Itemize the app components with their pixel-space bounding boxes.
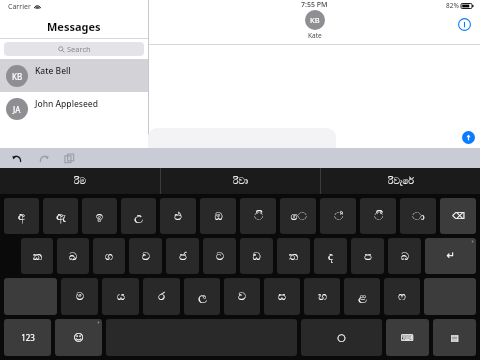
staticText: ඔ <box>214 211 223 222</box>
staticText: ක <box>33 251 42 262</box>
button[interactable]: හ <box>304 278 340 315</box>
button[interactable]: ස <box>264 278 300 315</box>
button[interactable]: ☺ <box>55 319 102 356</box>
staticText: බ <box>401 251 409 262</box>
button[interactable]: ම <box>61 278 98 315</box>
staticText: ට <box>216 251 224 262</box>
button[interactable]: ○ <box>301 319 382 356</box>
staticText: ෙ <box>290 211 307 222</box>
staticText: Messages <box>47 19 101 34</box>
button[interactable]: ග <box>93 238 125 274</box>
button[interactable]: ජ <box>166 238 199 274</box>
staticText: ච <box>142 251 150 262</box>
button[interactable]: ත <box>277 238 310 274</box>
staticText: ර <box>158 291 165 302</box>
button[interactable]: රිවා <box>161 168 320 194</box>
button[interactable]: Undo <box>9 150 25 166</box>
staticText: 82% <box>446 1 459 10</box>
button[interactable]: ළ <box>344 278 380 315</box>
staticText: Kate Bell <box>35 65 71 77</box>
button[interactable]: ක <box>21 238 53 274</box>
staticText: රිවැරේ <box>388 177 414 186</box>
staticText: ී <box>374 211 383 222</box>
button[interactable]: උ <box>121 198 156 234</box>
staticText: එ <box>174 211 182 222</box>
staticText: ඛ <box>69 251 77 262</box>
staticText: ් <box>334 211 343 222</box>
button[interactable]: Details <box>456 16 472 32</box>
staticText: KB <box>12 71 23 82</box>
staticText: ද <box>328 251 333 262</box>
button[interactable]: රිවැරේ <box>321 168 480 194</box>
button[interactable]: එ <box>160 198 196 234</box>
button[interactable]: ඉ <box>82 198 117 234</box>
staticText: JA <box>13 104 21 115</box>
staticText: ⌨ <box>401 333 414 343</box>
button[interactable]: Paste <box>61 150 77 166</box>
staticText: 7:55 PM <box>301 0 328 10</box>
button[interactable]: ට <box>203 238 236 274</box>
button[interactable]: ඇ <box>43 198 78 234</box>
staticText: ☺ <box>73 332 84 344</box>
staticText: ↵ <box>446 250 455 262</box>
button[interactable]: ⌫ <box>440 198 476 234</box>
button[interactable]: ඛ <box>57 238 89 274</box>
button[interactable]: ප <box>351 238 384 274</box>
button[interactable]: රිම <box>0 168 160 194</box>
button[interactable]: ල <box>184 278 220 315</box>
staticText: ග <box>105 251 113 262</box>
button[interactable]: ▤ <box>433 319 476 356</box>
button[interactable]: ි <box>240 198 276 234</box>
staticText: ඉ <box>96 211 103 222</box>
button[interactable]: ් <box>320 198 356 234</box>
button[interactable]: ව <box>224 278 260 315</box>
button[interactable]: ඩ <box>240 238 273 274</box>
button[interactable]: Search <box>4 42 144 56</box>
button[interactable]: ී <box>360 198 396 234</box>
staticText: ළ <box>358 291 367 302</box>
button[interactable]: ච <box>129 238 162 274</box>
staticText: ඇ <box>56 211 66 222</box>
button[interactable]: අ <box>4 198 39 234</box>
staticText: KB <box>310 15 320 25</box>
staticText: ත <box>289 251 298 262</box>
staticText: රිම <box>74 177 86 186</box>
button[interactable]: ඔ <box>200 198 236 234</box>
button[interactable]: KB <box>305 10 325 40</box>
staticText: ෆ <box>398 291 406 302</box>
staticText: Search <box>67 44 91 54</box>
staticText: Carrier <box>8 2 31 12</box>
staticText: ප <box>364 251 372 262</box>
staticText: ▤ <box>450 333 459 343</box>
button[interactable] <box>154 130 458 144</box>
button[interactable]: KB <box>0 59 148 92</box>
staticText: ජ <box>179 251 187 262</box>
button[interactable]: JA <box>0 92 148 125</box>
button[interactable]: ෆ <box>384 278 420 315</box>
staticText: John Appleseed <box>35 98 98 110</box>
staticText: ⌫ <box>452 211 465 221</box>
staticText: Kate <box>308 31 322 40</box>
button[interactable]: 123 <box>4 319 51 356</box>
staticText: ල <box>198 291 207 302</box>
staticText: ා <box>412 211 425 222</box>
staticText: හ <box>318 291 327 302</box>
button[interactable]: ⌨ <box>386 319 429 356</box>
button[interactable]: ↵ <box>425 238 476 274</box>
staticText: ි <box>254 211 263 222</box>
button[interactable]: ර <box>143 278 180 315</box>
staticText: ය <box>117 291 125 302</box>
button[interactable]: ෙ <box>280 198 316 234</box>
button[interactable]: Send <box>462 131 475 144</box>
staticText: ඩ <box>252 251 261 262</box>
button[interactable]: ය <box>102 278 139 315</box>
button[interactable]: බ <box>388 238 421 274</box>
button[interactable]: ා <box>400 198 436 234</box>
button[interactable]: Redo <box>35 150 51 166</box>
staticText: අ <box>18 211 25 222</box>
staticText: උ <box>134 211 143 222</box>
button[interactable]: ද <box>314 238 347 274</box>
